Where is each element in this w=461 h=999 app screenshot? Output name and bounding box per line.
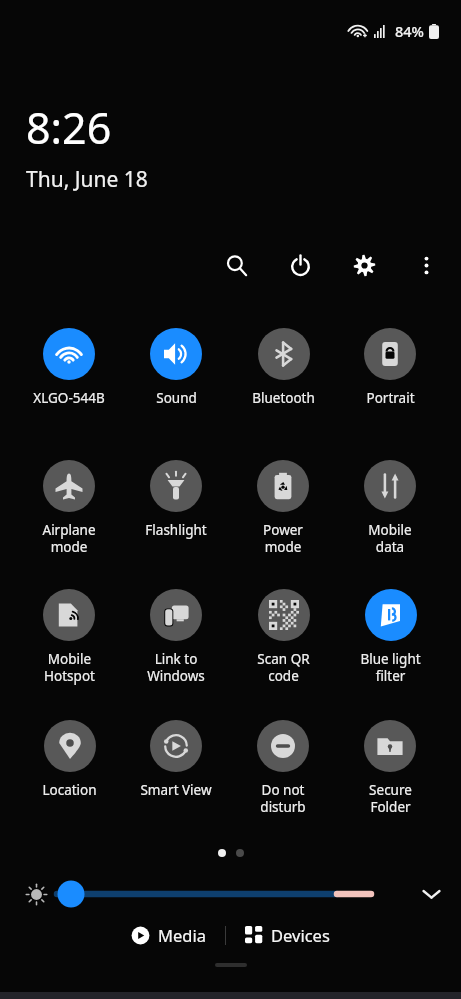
button[interactable]: Airplane mode (17, 460, 121, 556)
staticText: Scan QR code (257, 650, 310, 685)
staticText: Devices (271, 924, 330, 946)
staticText: Sound (156, 389, 197, 407)
button[interactable]: Mobile Hotspot (17, 589, 121, 685)
button[interactable]: Do not disturb (231, 720, 335, 816)
staticText: Portrait (366, 389, 415, 407)
staticText: Airplane mode (42, 521, 96, 556)
button[interactable]: Media (123, 918, 214, 952)
button[interactable]: Settings (343, 244, 385, 286)
button[interactable]: Sound (124, 328, 228, 407)
button[interactable]: Portrait (338, 328, 442, 407)
button[interactable]: Blue light filter (338, 589, 442, 685)
staticText: Mobile data (368, 521, 412, 556)
button[interactable]: XLGO-544B (17, 328, 121, 407)
button[interactable]: Bluetooth (231, 328, 335, 407)
staticText: Bluetooth (252, 389, 315, 407)
staticText: 8:26 (26, 98, 112, 157)
button[interactable]: Mobile data (338, 460, 442, 556)
staticText: Thu, June 18 (26, 165, 148, 194)
button[interactable]: Power mode (231, 460, 335, 556)
staticText: XLGO-544B (33, 389, 105, 407)
button[interactable]: Link to Windows (124, 589, 228, 685)
staticText: Media (158, 924, 206, 946)
staticText: Smart View (140, 781, 212, 799)
staticText: Secure Folder (369, 781, 412, 816)
staticText: Flashlight (145, 521, 207, 539)
button[interactable]: Expand brightness (409, 872, 453, 916)
button[interactable]: Location (17, 720, 121, 799)
staticText: 84% (395, 21, 424, 41)
button[interactable]: Secure Folder (338, 720, 442, 816)
staticText: Power mode (263, 521, 303, 556)
staticText: Mobile Hotspot (44, 650, 95, 685)
staticText: Blue light filter (360, 650, 421, 685)
button[interactable]: Flashlight (124, 460, 228, 539)
staticText: Do not disturb (260, 781, 306, 816)
button[interactable]: Devices (237, 918, 338, 952)
button[interactable]: Search (215, 244, 257, 286)
staticText: Location (42, 781, 97, 799)
button[interactable]: Scan QR code (231, 589, 335, 685)
button[interactable]: More options (405, 244, 447, 286)
button[interactable]: Smart View (124, 720, 228, 799)
staticText: Link to Windows (147, 650, 205, 685)
button[interactable]: Brightness (53, 881, 409, 907)
button[interactable]: Power (279, 244, 321, 286)
